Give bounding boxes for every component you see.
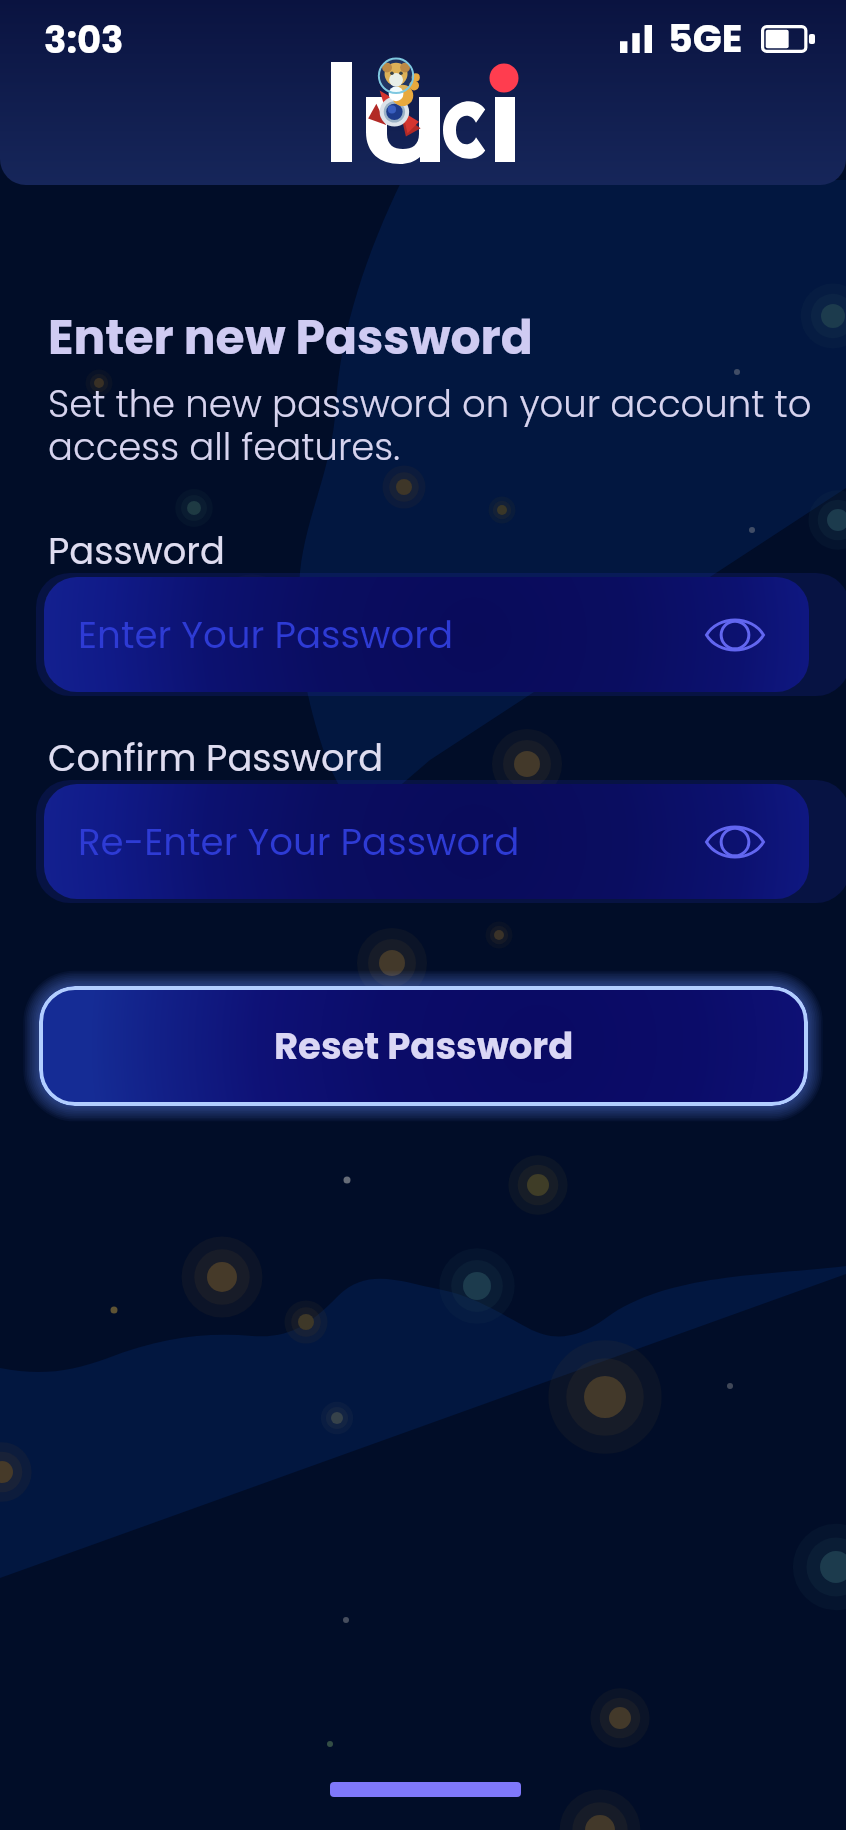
staticText: Enter Your Password [78, 609, 454, 661]
staticText: Reset Password [274, 1020, 574, 1072]
button[interactable]: Show password [695, 595, 775, 675]
staticText: Enter new Password [48, 304, 533, 370]
staticText: Re-Enter Your Password [78, 816, 520, 868]
button[interactable]: Reset Password [39, 986, 808, 1106]
button[interactable]: Enter Your Password [44, 577, 809, 692]
staticText: Password [48, 525, 225, 577]
staticText: Set the new password on your account to … [48, 378, 818, 472]
staticText: 3:03 [44, 14, 124, 66]
staticText: Confirm Password [48, 732, 384, 784]
button[interactable]: Re-Enter Your Password [44, 784, 809, 899]
button[interactable]: Show password [695, 802, 775, 882]
staticText: 5GE [668, 12, 743, 65]
